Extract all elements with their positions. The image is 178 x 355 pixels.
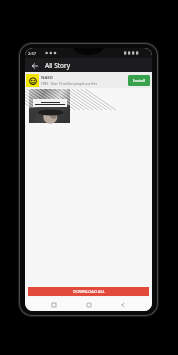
staticText: NASO bbox=[41, 75, 53, 81]
button[interactable]: Back bbox=[29, 60, 40, 71]
button[interactable]: NASO bbox=[25, 72, 152, 88]
button[interactable]: Install bbox=[128, 75, 150, 86]
button[interactable]: Recents bbox=[48, 299, 60, 311]
button[interactable] bbox=[29, 89, 70, 123]
staticText: 2:57 bbox=[28, 51, 36, 56]
staticText: DOWNLOAD ALL bbox=[73, 289, 105, 294]
button[interactable]: Home bbox=[83, 299, 95, 311]
staticText: FREE · Over 10 million people use this bbox=[41, 82, 97, 86]
staticText: All Story bbox=[45, 61, 71, 70]
staticText: Install bbox=[133, 78, 145, 83]
button[interactable]: DOWNLOAD ALL bbox=[28, 287, 149, 296]
button[interactable]: Back bbox=[117, 299, 129, 311]
